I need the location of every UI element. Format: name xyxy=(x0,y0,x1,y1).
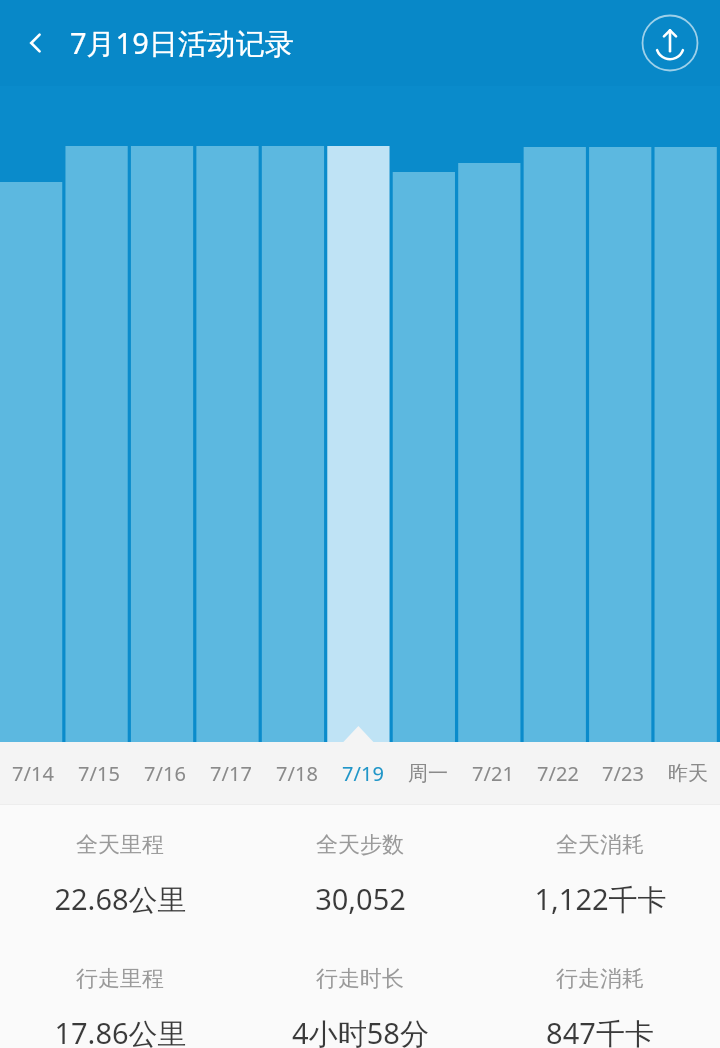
button[interactable]: 全天步数 xyxy=(240,805,480,939)
button[interactable]: 7/18 xyxy=(264,742,330,804)
staticText: 7/16 xyxy=(144,760,186,787)
staticText: 1,122千卡 xyxy=(534,879,667,919)
staticText: 行走消耗 xyxy=(556,965,644,993)
staticText: 行走里程 xyxy=(76,965,164,993)
button[interactable]: 7/22 xyxy=(525,742,590,804)
button[interactable]: 全天消耗 xyxy=(480,805,720,939)
button[interactable]: Share xyxy=(638,11,702,75)
button[interactable]: 行走里程 xyxy=(0,939,240,1048)
button[interactable]: 7/17 xyxy=(198,742,264,804)
button[interactable]: 7/21 xyxy=(460,742,525,804)
staticText: 7/21 xyxy=(472,760,514,787)
staticText: 7/23 xyxy=(602,760,644,787)
staticText: 全天里程 xyxy=(76,831,164,859)
staticText: 7月19日活动记录 xyxy=(70,23,294,63)
staticText: 30,052 xyxy=(315,879,406,918)
staticText: 7/15 xyxy=(78,760,120,787)
staticText: 17.86公里 xyxy=(54,1013,187,1048)
button[interactable]: 全天里程 xyxy=(0,805,240,939)
staticText: 7/22 xyxy=(537,760,579,787)
staticText: 全天步数 xyxy=(316,831,404,859)
staticText: 7/14 xyxy=(12,760,54,787)
staticText: 7/17 xyxy=(210,760,252,787)
staticText: 22.68公里 xyxy=(54,879,187,919)
staticText: 7/19 xyxy=(342,760,384,787)
button[interactable]: 7/14 xyxy=(0,742,66,804)
button[interactable]: 7/19 xyxy=(330,742,395,804)
staticText: 847千卡 xyxy=(546,1013,654,1048)
button[interactable]: 7/15 xyxy=(66,742,132,804)
button[interactable]: 行走时长 xyxy=(240,939,480,1048)
button[interactable]: 7/23 xyxy=(590,742,655,804)
staticText: 周一 xyxy=(408,761,448,786)
staticText: 行走时长 xyxy=(316,965,404,993)
staticText: 昨天 xyxy=(668,761,708,786)
button[interactable]: 昨天 xyxy=(655,742,720,804)
staticText: 4小时58分 xyxy=(292,1013,429,1048)
button[interactable]: 行走消耗 xyxy=(480,939,720,1048)
button[interactable]: 周一 xyxy=(395,742,460,804)
staticText: 7/18 xyxy=(276,760,318,787)
button[interactable]: Back xyxy=(8,15,64,71)
staticText: 全天消耗 xyxy=(556,831,644,859)
button[interactable]: 7/16 xyxy=(132,742,198,804)
